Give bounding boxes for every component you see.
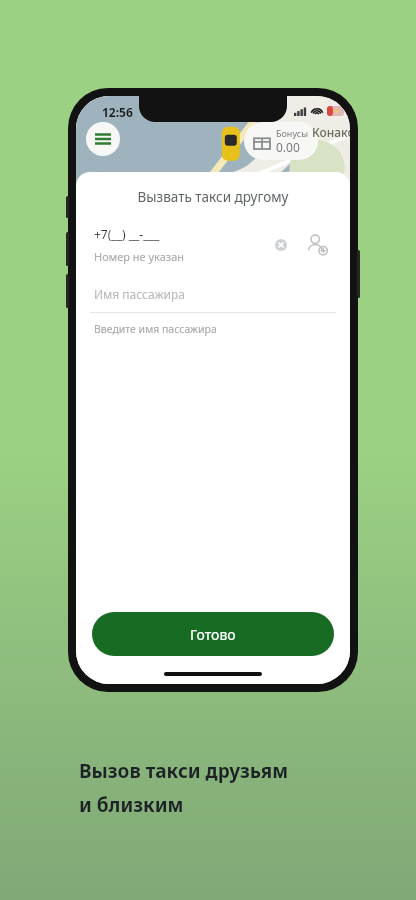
staticText: Вызвать такси другому xyxy=(76,188,350,206)
button[interactable]: Clear xyxy=(268,232,294,258)
staticText: Бонусы xyxy=(276,127,308,139)
button[interactable]: Готово xyxy=(92,612,334,656)
button[interactable]: Add contact xyxy=(302,230,332,260)
staticText: Готово xyxy=(190,625,236,644)
staticText: Введите имя пассажира xyxy=(94,322,217,336)
staticText: Имя пассажира xyxy=(94,286,185,302)
staticText: +7(__) __-___ xyxy=(94,226,160,242)
staticText: 0.00 xyxy=(276,139,300,155)
staticText: Вызов такси друзьям xyxy=(79,758,289,784)
staticText: и близким xyxy=(79,792,184,818)
staticText: Номер не указан xyxy=(94,249,185,264)
button[interactable]: Menu xyxy=(86,122,120,156)
staticText: 12:56 xyxy=(102,104,133,120)
staticText: Конаково xyxy=(312,124,350,140)
button[interactable]: Бонусы xyxy=(244,122,318,160)
